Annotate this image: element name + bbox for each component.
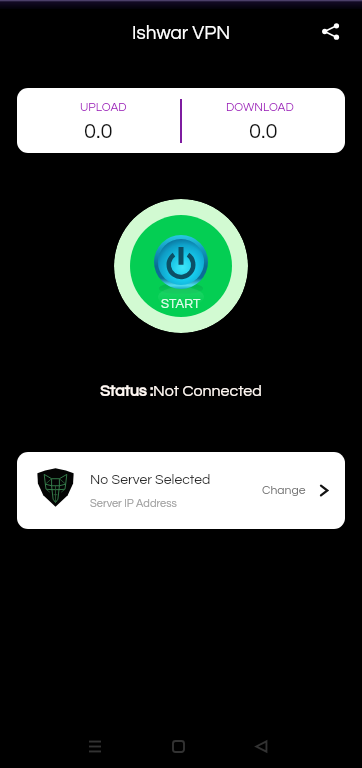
staticText: DOWNLOAD bbox=[226, 101, 294, 113]
button[interactable]: Start VPN bbox=[114, 199, 248, 333]
staticText: Status :Not Connected bbox=[100, 383, 262, 399]
button[interactable]: Back bbox=[241, 726, 281, 766]
staticText: UPLOAD bbox=[80, 101, 127, 113]
staticText: 0.0 bbox=[84, 120, 113, 143]
staticText: No Server Selected bbox=[90, 473, 211, 487]
staticText: Server IP Address bbox=[90, 498, 177, 509]
button[interactable]: Share bbox=[312, 13, 348, 49]
button[interactable]: No Server Selected bbox=[17, 452, 345, 529]
staticText: Ishwar VPN bbox=[132, 23, 231, 43]
staticText: START bbox=[161, 297, 201, 310]
button[interactable]: Home bbox=[158, 726, 198, 766]
staticText: Change bbox=[262, 484, 306, 497]
button[interactable]: Recent apps bbox=[75, 726, 115, 766]
staticText: 0.0 bbox=[249, 120, 278, 143]
